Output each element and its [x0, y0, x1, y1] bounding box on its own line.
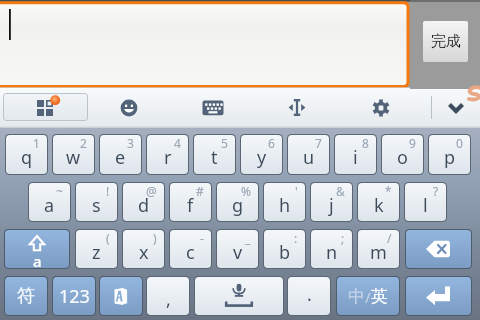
staticText: 0 — [456, 135, 463, 151]
staticText: a — [44, 193, 55, 218]
staticText: z — [92, 240, 101, 265]
staticText: o — [397, 145, 408, 170]
staticText: / — [365, 287, 371, 307]
button[interactable]: * — [357, 182, 400, 222]
staticText: , — [166, 287, 171, 312]
button[interactable]: 6 — [240, 134, 283, 175]
staticText: _ — [245, 230, 251, 246]
staticText: - — [200, 230, 204, 246]
button[interactable]: · — [287, 276, 331, 316]
staticText: q — [21, 145, 33, 170]
button[interactable]: ; — [310, 229, 353, 269]
staticText: ; — [341, 230, 345, 246]
button[interactable]: _ — [216, 229, 259, 269]
staticText: # — [196, 183, 204, 199]
button[interactable]: Switch Chinese English — [336, 276, 400, 316]
staticText: ( — [106, 230, 110, 246]
staticText: ! — [106, 183, 110, 199]
button[interactable]: 9 — [381, 134, 424, 175]
staticText: g — [232, 193, 244, 218]
button[interactable]: 2 — [52, 134, 95, 175]
staticText: 2 — [80, 135, 87, 151]
staticText: b — [279, 240, 291, 265]
staticText: y — [257, 145, 267, 170]
staticText: 符 — [17, 285, 35, 308]
button[interactable]: ( — [75, 229, 118, 269]
button[interactable]: , — [146, 276, 190, 316]
button[interactable]: @ — [122, 182, 165, 222]
button[interactable]: 4 — [146, 134, 189, 175]
staticText: 6 — [268, 135, 275, 151]
staticText: m — [370, 240, 387, 265]
button[interactable]: 1 — [5, 134, 48, 175]
staticText: 中 — [348, 286, 365, 307]
button[interactable]: Symbols — [4, 276, 48, 316]
button[interactable]: Move cursor — [278, 93, 316, 122]
staticText: k — [374, 193, 384, 218]
button[interactable]: 5 — [193, 134, 236, 175]
staticText: ~ — [56, 183, 63, 199]
staticText: d — [138, 193, 150, 218]
button[interactable]: % — [216, 182, 259, 222]
button[interactable]: & — [310, 182, 353, 222]
staticText: & — [336, 183, 345, 199]
button[interactable]: / — [357, 229, 400, 269]
staticText: 7 — [315, 135, 322, 151]
staticText: 8 — [362, 135, 369, 151]
button[interactable]: Space — [194, 276, 284, 316]
staticText: 英 — [371, 286, 388, 307]
staticText: · — [307, 287, 312, 312]
staticText: 3 — [127, 135, 134, 151]
staticText: u — [303, 145, 315, 170]
button[interactable]: # — [169, 182, 212, 222]
staticText: s — [92, 193, 101, 218]
staticText: ' — [295, 183, 298, 199]
staticText: @ — [146, 183, 157, 199]
staticText: 5 — [221, 135, 228, 151]
button[interactable]: ' — [263, 182, 306, 222]
button[interactable]: ! — [75, 182, 118, 222]
button[interactable]: ) — [122, 229, 165, 269]
staticText: i — [353, 145, 358, 170]
button[interactable]: Input methods — [3, 93, 88, 121]
staticText: ) — [153, 230, 157, 246]
button[interactable]: 3 — [99, 134, 142, 175]
button[interactable]: Keyboard layout — [194, 93, 232, 122]
button[interactable]: 完成 — [423, 21, 468, 62]
staticText: 9 — [409, 135, 416, 151]
button[interactable]: 7 — [287, 134, 330, 175]
button[interactable]: : — [263, 229, 306, 269]
staticText: 1 — [33, 135, 40, 151]
staticText: l — [423, 193, 428, 218]
button[interactable]: Dictionary — [99, 276, 143, 316]
button[interactable]: - — [169, 229, 212, 269]
staticText: * — [385, 183, 392, 199]
staticText: 123 — [59, 284, 90, 309]
button[interactable]: 8 — [334, 134, 377, 175]
staticText: p — [444, 145, 456, 170]
staticText: c — [186, 240, 195, 265]
staticText: x — [139, 240, 149, 265]
button[interactable]: 0 — [428, 134, 471, 175]
button[interactable]: ~ — [28, 182, 71, 222]
button[interactable]: Emoji — [110, 93, 148, 122]
button[interactable]: Shift — [4, 229, 70, 269]
button[interactable]: Enter — [405, 276, 472, 316]
staticText: r — [164, 145, 172, 170]
staticText: w — [66, 145, 81, 170]
staticText: % — [241, 183, 251, 199]
staticText: n — [326, 240, 338, 265]
staticText: / — [387, 230, 392, 246]
staticText: ? — [433, 183, 439, 199]
staticText: t — [211, 145, 218, 170]
staticText: f — [187, 193, 194, 218]
button[interactable]: Hide keyboard — [440, 94, 472, 122]
staticText: j — [329, 193, 334, 218]
staticText: 完成 — [431, 32, 461, 51]
button[interactable]: Text input — [0, 0, 410, 89]
button[interactable]: Backspace — [405, 229, 472, 269]
button[interactable]: Numbers — [52, 276, 96, 316]
button[interactable]: Settings — [362, 93, 400, 122]
staticText: h — [279, 193, 291, 218]
button[interactable]: ? — [404, 182, 447, 222]
